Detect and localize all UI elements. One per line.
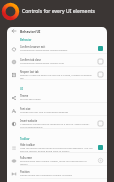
staticText: Confirm tab close [20,58,41,61]
button[interactable]: App logo [1,2,20,21]
staticText: Change the font size in displaying websi… [20,110,69,113]
button[interactable]: Fullscreen [7,153,107,166]
staticText: Invert website [20,119,38,122]
staticText: Font size [20,107,31,110]
button[interactable]: Position [7,166,107,179]
staticText: Confirm browser exit [20,45,46,48]
button[interactable]: Checked [98,145,103,150]
staticText: Toolbar [20,137,30,141]
button[interactable]: Option [98,158,103,163]
staticText: Confirmation dialog when closing browser [20,48,68,51]
button[interactable]: Hide toolbar [7,140,107,153]
staticText: Theme [20,94,29,97]
staticText: Fullscreen [20,156,33,159]
staticText: Running back with toolbar hidden, while … [20,159,94,165]
staticText: Behavior/UI [20,29,41,34]
button[interactable]: Invert website [7,116,107,129]
button[interactable]: Unchecked [98,72,103,77]
staticText: Hide toolbar [20,143,35,146]
button[interactable]: Reopen last tab [7,67,107,80]
button[interactable]: Back [7,27,20,35]
button[interactable]: Font size [7,103,107,116]
staticText: Controls for every UI elements [22,8,95,15]
staticText: Set the app theme [20,97,41,100]
button[interactable]: Unchecked [98,59,103,64]
button[interactable]: Confirm tab close [7,54,107,67]
button[interactable]: Unchecked [98,121,103,126]
staticText: Reopen last tab [20,70,39,73]
staticText: Position [20,170,30,173]
staticText: A website's content will be rendered in … [20,122,90,128]
staticText: Reopen a new tab when the last tab is cl… [20,73,94,79]
button[interactable]: Confirm browser exit [7,41,107,54]
button[interactable]: Theme [7,90,107,103]
staticText: Hide the whole toolbar when scrolling th… [20,146,93,152]
staticText: UI [20,87,23,91]
staticText: Behavior [20,38,32,42]
staticText: Decide where the Navigation Toolbar is p… [20,173,72,176]
staticText: Confirmation dialog when closing a tab [20,61,65,64]
button[interactable]: Checked [98,46,103,51]
